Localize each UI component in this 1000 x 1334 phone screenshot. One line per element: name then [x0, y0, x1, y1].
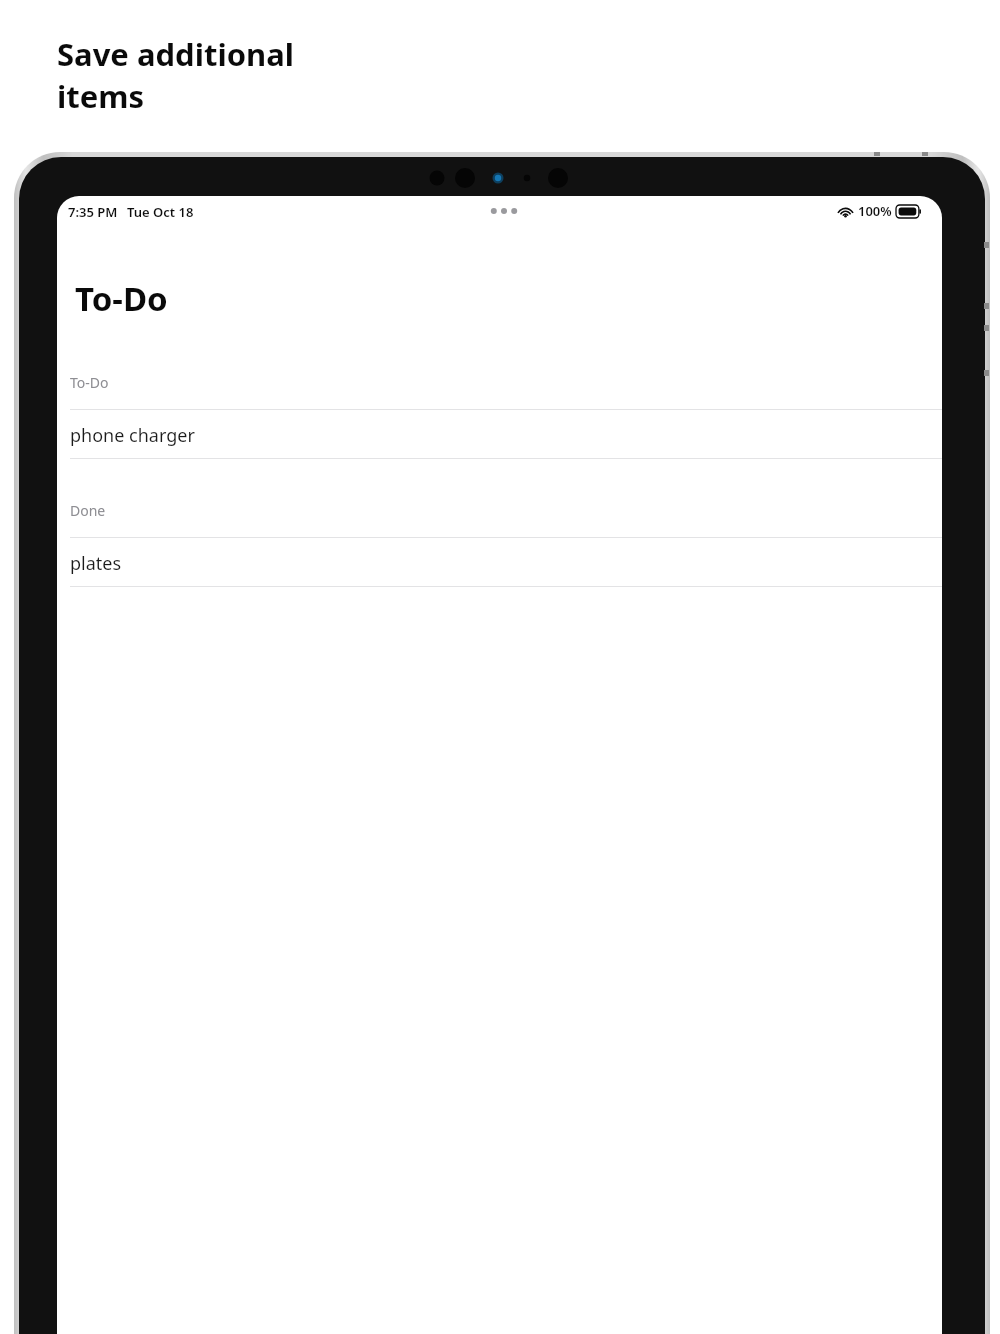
- staticText: plates: [70, 551, 122, 576]
- staticText: 7:35 PM: [68, 203, 118, 221]
- staticText: To-Do: [75, 276, 168, 321]
- staticText: To-Do: [70, 373, 109, 392]
- staticText: 100%: [858, 202, 892, 220]
- staticText: Save additional: [57, 33, 294, 75]
- staticText: Done: [70, 501, 106, 520]
- staticText: phone charger: [70, 423, 195, 448]
- button[interactable]: phone charger: [57, 410, 942, 458]
- staticText: items: [57, 75, 145, 117]
- staticText: Tue Oct 18: [127, 203, 194, 221]
- button[interactable]: plates: [57, 538, 942, 586]
